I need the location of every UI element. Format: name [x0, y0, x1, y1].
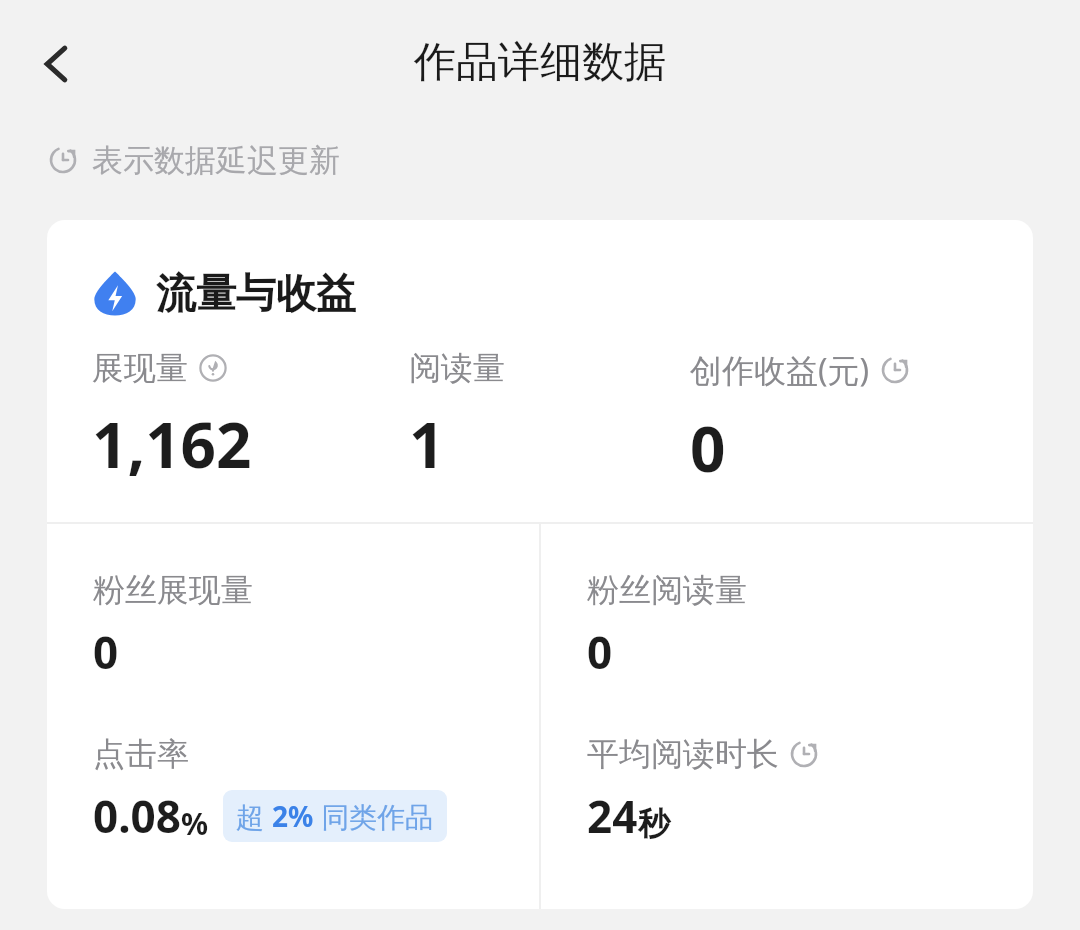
staticText: 0.08	[93, 786, 181, 846]
staticText: 超	[236, 797, 272, 835]
staticText: 1,162	[92, 402, 252, 486]
staticText: 作品详细数据	[414, 36, 666, 89]
staticText: 展现量	[92, 348, 188, 388]
other: Delayed update	[789, 739, 819, 769]
staticText: 点击率	[93, 734, 189, 774]
staticText: 阅读量	[409, 348, 505, 388]
button[interactable]: 流量与收益	[92, 268, 356, 318]
staticText: 表示数据延迟更新	[92, 141, 340, 180]
staticText: 创作收益(元)	[690, 348, 870, 392]
staticText: 粉丝阅读量	[587, 570, 747, 610]
button[interactable]: Back	[14, 22, 98, 106]
staticText: 秒	[638, 804, 670, 844]
staticText: 流量与收益	[156, 268, 356, 318]
button[interactable]: 超	[223, 790, 447, 842]
staticText: %	[181, 803, 209, 844]
button[interactable]: 阅读量	[409, 348, 690, 486]
other: Help	[198, 353, 228, 383]
staticText: 0	[587, 622, 613, 682]
staticText: 同类作品	[314, 797, 434, 835]
staticText: 2%	[272, 797, 314, 835]
staticText: 24	[587, 786, 638, 846]
staticText: 0	[690, 406, 726, 490]
staticText: 粉丝展现量	[93, 570, 253, 610]
button[interactable]: 展现量	[92, 348, 409, 486]
staticText: 1	[409, 402, 445, 486]
button[interactable]: 创作收益(元)	[690, 348, 1013, 490]
staticText: 0	[93, 622, 119, 682]
staticText: 平均阅读时长	[587, 734, 779, 774]
other: Delayed update	[880, 355, 910, 385]
